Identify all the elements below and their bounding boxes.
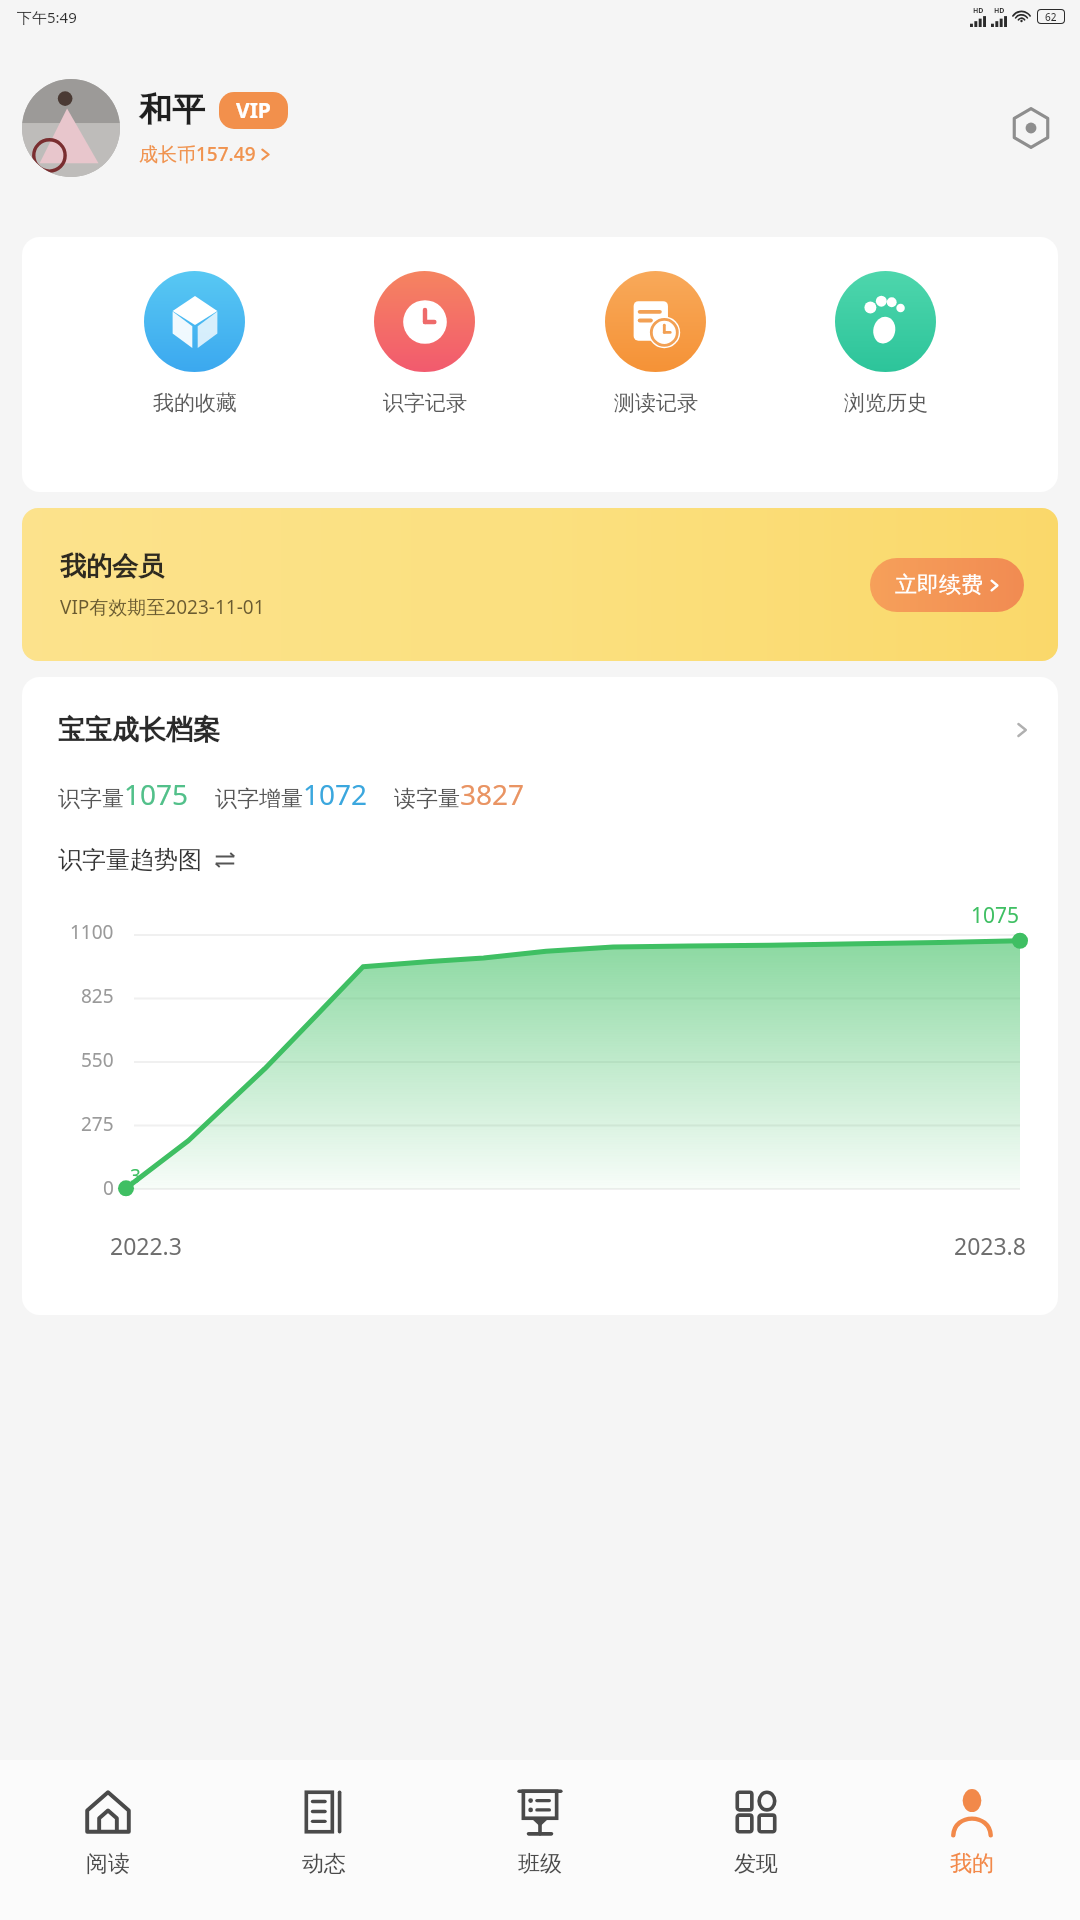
button[interactable]: 班级 [432, 1760, 648, 1920]
staticText: 成长币157.49 [139, 141, 256, 167]
button[interactable]: 我的收藏 [136, 271, 253, 416]
staticText: HD [973, 6, 984, 16]
staticText: 识字量 [58, 785, 124, 813]
staticText: 发现 [734, 1850, 778, 1878]
staticText: 我的会员 [60, 550, 164, 583]
staticText: 1072 [303, 775, 368, 813]
button[interactable]: 成长币157.49 [139, 141, 270, 167]
button[interactable]: Avatar [22, 79, 120, 177]
staticText: 275 [81, 1111, 114, 1137]
staticText: 550 [81, 1047, 114, 1073]
button[interactable]: VIP [219, 92, 288, 129]
button[interactable]: 识字记录 [366, 271, 483, 416]
button[interactable]: 阅读 [0, 1760, 216, 1920]
button[interactable]: 发现 [648, 1760, 864, 1920]
button[interactable]: 测读记录 [597, 271, 714, 416]
staticText: 825 [81, 983, 114, 1009]
staticText: 下午5:49 [17, 7, 77, 27]
staticText: 0 [103, 1175, 114, 1201]
staticText: 我的 [950, 1850, 994, 1878]
button[interactable]: 我的 [864, 1760, 1080, 1920]
staticText: 1075 [124, 775, 189, 813]
staticText: 识字增量 [215, 785, 303, 813]
staticText: 2023.8 [954, 1230, 1026, 1261]
staticText: 识字量趋势图 [58, 845, 202, 875]
staticText: 班级 [518, 1850, 562, 1878]
button[interactable]: 宝宝成长档案 [22, 677, 1058, 753]
staticText: 立即续费 [895, 571, 983, 599]
staticText: 阅读 [86, 1850, 130, 1878]
button[interactable]: 立即续费 [870, 558, 1024, 612]
staticText: 我的收藏 [153, 390, 237, 416]
staticText: 读字量 [394, 785, 460, 813]
staticText: 62 [1045, 10, 1057, 23]
staticText: 测读记录 [614, 390, 698, 416]
staticText: 识字记录 [383, 390, 467, 416]
button[interactable]: Switch chart [212, 847, 238, 873]
staticText: 和平 [139, 89, 205, 131]
staticText: VIP [236, 96, 271, 125]
button[interactable]: 动态 [216, 1760, 432, 1920]
staticText: VIP有效期至2023-11-01 [60, 594, 265, 620]
button[interactable]: 我的会员 [22, 508, 1058, 661]
staticText: 2022.3 [110, 1230, 182, 1261]
staticText: 浏览历史 [844, 390, 928, 416]
button[interactable]: Settings [1004, 101, 1058, 155]
staticText: 动态 [302, 1850, 346, 1878]
staticText: 1100 [70, 919, 114, 945]
staticText: 3827 [460, 775, 525, 813]
staticText: 3 [130, 1163, 141, 1189]
staticText: HD [994, 6, 1005, 16]
button[interactable]: 浏览历史 [827, 271, 944, 416]
staticText: 1075 [971, 901, 1020, 930]
staticText: 宝宝成长档案 [58, 713, 1016, 747]
